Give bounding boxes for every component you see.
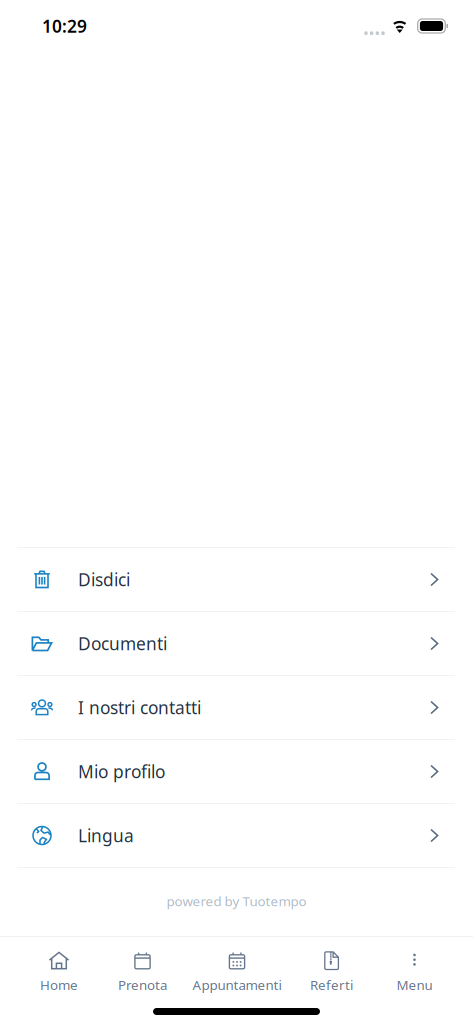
staticText: I nostri contatti bbox=[78, 696, 201, 719]
staticText: 10:29 bbox=[42, 14, 87, 37]
button[interactable]: Menu bbox=[356, 937, 473, 1008]
staticText: Prenota bbox=[118, 976, 167, 994]
staticText: Documenti bbox=[78, 632, 167, 655]
staticText: Mio profilo bbox=[78, 760, 165, 783]
staticText: Referti bbox=[310, 976, 353, 994]
button[interactable]: Lingua bbox=[0, 804, 473, 867]
button[interactable]: Referti bbox=[307, 937, 356, 1008]
staticText: Home bbox=[40, 976, 78, 994]
staticText: Menu bbox=[396, 976, 432, 994]
button[interactable]: Mio profilo bbox=[0, 740, 473, 803]
button[interactable]: Prenota bbox=[118, 937, 167, 1008]
staticText: Appuntamenti bbox=[192, 976, 281, 994]
staticText: Disdici bbox=[78, 568, 130, 591]
button[interactable]: Disdici bbox=[0, 548, 473, 611]
button[interactable]: Appuntamenti bbox=[167, 937, 307, 1008]
staticText: powered by Tuotempo bbox=[166, 892, 306, 910]
button[interactable]: Home bbox=[0, 937, 118, 1008]
staticText: Lingua bbox=[78, 824, 134, 847]
button[interactable]: Documenti bbox=[0, 612, 473, 675]
button[interactable]: I nostri contatti bbox=[0, 676, 473, 739]
